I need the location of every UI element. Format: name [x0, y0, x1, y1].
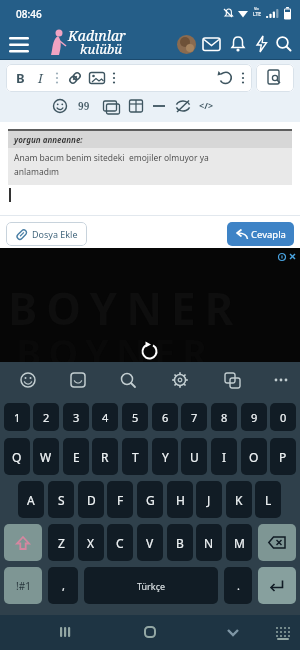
button[interactable] — [243, 362, 290, 398]
button[interactable]: X — [78, 524, 104, 561]
staticText: yorgun anneanne: — [14, 134, 83, 145]
button[interactable]: E — [63, 438, 89, 475]
button[interactable] — [88, 69, 106, 87]
button[interactable] — [196, 362, 243, 398]
button[interactable] — [253, 34, 271, 54]
staticText: M — [234, 535, 245, 551]
staticText: V — [146, 535, 154, 551]
button[interactable] — [8, 362, 55, 398]
button[interactable]: Kadınlar — [46, 26, 146, 60]
button[interactable]: 9 — [241, 403, 267, 431]
staticText: Vo — [254, 6, 259, 11]
staticText: Cevapla — [251, 228, 286, 241]
button[interactable]: I — [38, 69, 43, 87]
button[interactable]: W — [33, 438, 59, 475]
staticText: , — [62, 578, 65, 593]
button[interactable]: U — [181, 438, 207, 475]
button[interactable]: , — [48, 567, 78, 604]
button[interactable] — [152, 104, 166, 108]
staticText: W — [40, 449, 52, 465]
staticText: . — [237, 578, 240, 593]
button[interactable]: Cevapla — [227, 222, 294, 246]
button[interactable]: G — [137, 481, 163, 518]
staticText: T — [132, 449, 139, 465]
button[interactable] — [137, 620, 163, 644]
button[interactable]: Dosya Ekle — [6, 222, 87, 246]
button[interactable]: P — [270, 438, 296, 475]
button[interactable] — [220, 620, 246, 644]
button[interactable]: J — [196, 481, 222, 518]
button[interactable] — [229, 35, 247, 53]
button[interactable]: M — [226, 524, 252, 561]
button[interactable]: B — [16, 69, 25, 87]
button[interactable] — [4, 524, 42, 561]
staticText: Y — [162, 449, 169, 465]
button[interactable]: Q — [4, 438, 30, 475]
button[interactable] — [66, 69, 84, 87]
button[interactable]: 4 — [92, 403, 118, 431]
button[interactable]: I — [211, 438, 237, 475]
staticText: LTE — [253, 11, 262, 18]
staticText: H — [176, 492, 185, 508]
button[interactable] — [52, 620, 78, 644]
button[interactable]: 7 — [181, 403, 207, 431]
button[interactable]: B — [167, 524, 193, 561]
button[interactable]: . — [224, 567, 252, 604]
button[interactable]: !#1 — [4, 567, 42, 604]
button[interactable]: 8 — [211, 403, 237, 431]
button[interactable]: 0 — [270, 403, 296, 431]
button[interactable] — [128, 98, 144, 114]
button[interactable] — [202, 36, 222, 53]
button[interactable] — [55, 362, 102, 398]
button[interactable]: A — [18, 481, 44, 518]
staticText: P — [279, 449, 287, 465]
staticText: E — [73, 449, 80, 465]
button[interactable] — [149, 362, 196, 398]
button[interactable] — [177, 35, 196, 54]
button[interactable] — [270, 620, 296, 644]
button[interactable]: R — [92, 438, 118, 475]
staticText: O — [249, 449, 259, 465]
button[interactable]: 3 — [63, 403, 89, 431]
staticText: 0 — [280, 410, 287, 425]
button[interactable]: 6 — [152, 403, 178, 431]
button[interactable]: N — [196, 524, 222, 561]
button[interactable]: Y — [152, 438, 178, 475]
button[interactable] — [102, 362, 149, 398]
button[interactable]: 99 — [78, 99, 90, 113]
button[interactable] — [216, 69, 234, 87]
button[interactable]: F — [107, 481, 133, 518]
button[interactable] — [102, 98, 120, 116]
button[interactable] — [8, 34, 36, 56]
button[interactable]: T — [122, 438, 148, 475]
staticText: 08:46 — [16, 7, 42, 21]
button[interactable]: BOYNER — [0, 248, 300, 362]
staticText: 7 — [191, 410, 198, 425]
staticText: C — [116, 535, 124, 551]
button[interactable] — [275, 35, 293, 53]
button[interactable] — [258, 567, 296, 604]
staticText: 8 — [221, 410, 228, 425]
staticText: Türkçe — [137, 580, 166, 592]
button[interactable]: O — [241, 438, 267, 475]
button[interactable]: 1 — [4, 403, 30, 431]
button[interactable]: S — [48, 481, 74, 518]
button[interactable] — [256, 64, 294, 92]
button[interactable]: C — [107, 524, 133, 561]
button[interactable]: 2 — [33, 403, 59, 431]
button[interactable]: </> — [199, 99, 214, 111]
button[interactable]: 5 — [122, 403, 148, 431]
button[interactable] — [258, 524, 296, 561]
button[interactable]: Z — [48, 524, 74, 561]
button[interactable]: L — [255, 481, 281, 518]
button[interactable]: H — [167, 481, 193, 518]
staticText: D — [87, 492, 96, 508]
button[interactable]: K — [226, 481, 252, 518]
button[interactable]: V — [137, 524, 163, 561]
button[interactable] — [52, 98, 68, 114]
button[interactable] — [174, 98, 192, 116]
staticText: G — [146, 492, 155, 508]
button[interactable]: Türkçe — [84, 567, 218, 604]
staticText: 2 — [43, 410, 50, 425]
button[interactable]: D — [78, 481, 104, 518]
